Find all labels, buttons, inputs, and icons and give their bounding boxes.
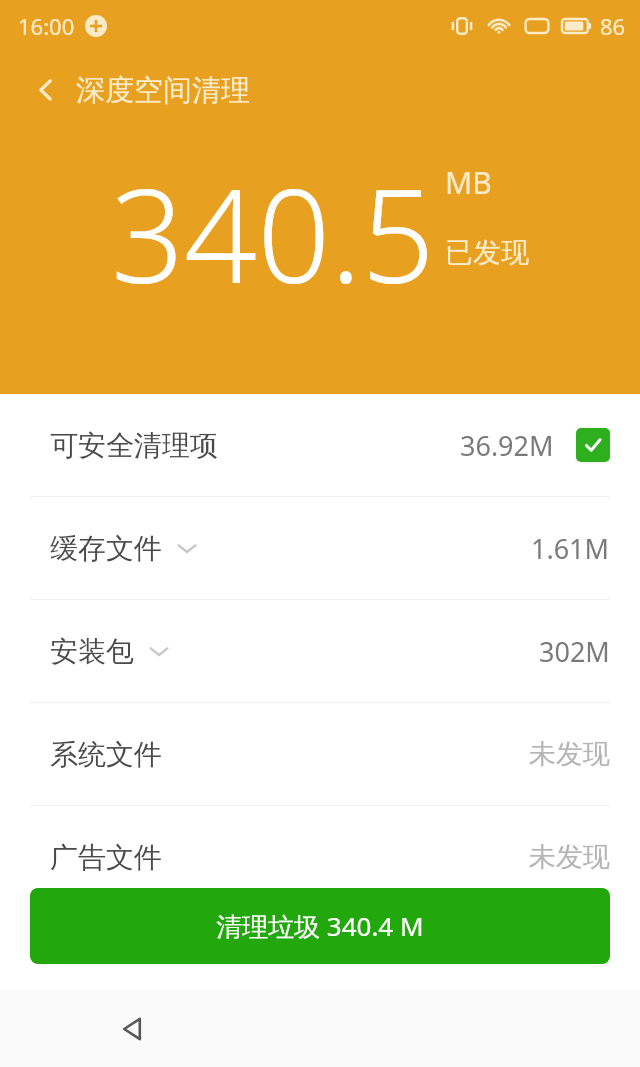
staticText: 安装包 — [50, 634, 134, 669]
staticText: 36.92M — [460, 427, 554, 464]
staticText: 广告文件 — [50, 840, 162, 875]
button[interactable]: 安装包 — [0, 600, 640, 702]
staticText: 未发现 — [529, 840, 610, 874]
button[interactable]: 返回 — [22, 66, 70, 114]
staticText: 清理垃圾 340.4 M — [216, 908, 424, 944]
staticText: 系统文件 — [50, 737, 162, 772]
button[interactable]: 系统文件 — [0, 703, 640, 805]
button[interactable]: 清理垃圾 340.4 M — [30, 888, 610, 964]
button[interactable]: 已选中 — [576, 428, 610, 462]
button[interactable]: 缓存文件 — [0, 497, 640, 599]
button[interactable]: 广告文件 — [0, 806, 640, 908]
staticText: 未发现 — [529, 737, 610, 771]
button[interactable]: Back — [104, 1001, 160, 1057]
staticText: 340.5 — [111, 146, 435, 320]
staticText: 16:00 — [18, 11, 75, 41]
staticText: 缓存文件 — [50, 531, 162, 566]
staticText: 可安全清理项 — [50, 428, 218, 463]
staticText: 1.61M — [531, 530, 610, 567]
staticText: MB — [445, 162, 492, 203]
button[interactable]: 可安全清理项 — [0, 394, 640, 496]
staticText: 86 — [600, 11, 626, 41]
staticText: 深度空间清理 — [76, 72, 250, 109]
staticText: 302M — [539, 633, 610, 670]
staticText: 已发现 — [445, 235, 529, 270]
